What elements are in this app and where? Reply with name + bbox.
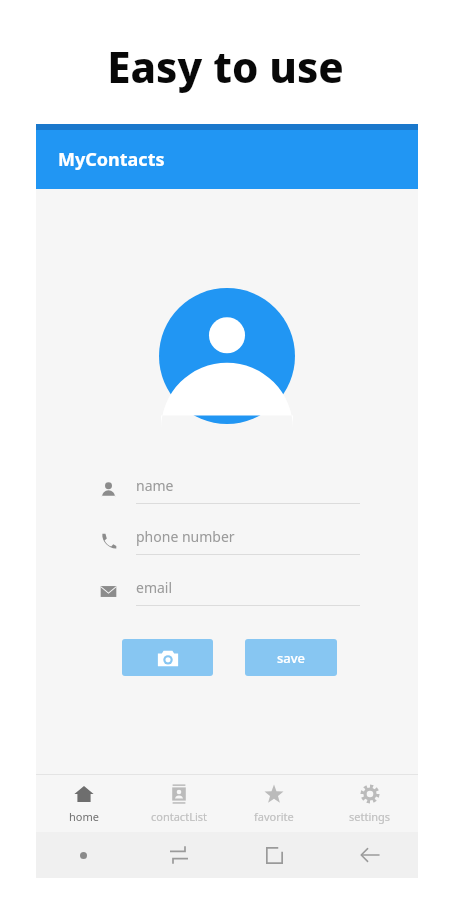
button[interactable]: contactList [131,775,226,832]
staticText: favorite [254,809,294,824]
staticText: MyContacts [58,147,165,172]
button[interactable]: name [100,472,360,507]
button[interactable]: Back [322,845,418,865]
button[interactable]: settings [322,775,418,832]
button[interactable]: Recents [226,847,322,864]
staticText: Easy to use [107,38,344,95]
staticText: email [136,578,173,597]
staticText: settings [349,809,391,824]
staticText: name [136,476,174,495]
button[interactable]: home [36,775,131,832]
button[interactable]: email [100,574,360,609]
button[interactable]: save [245,639,337,676]
button[interactable]: Switch apps [131,845,226,865]
button[interactable]: Take photo [122,639,213,676]
button[interactable]: favorite [226,775,322,832]
button[interactable]: phone number [100,523,360,558]
staticText: phone number [136,527,235,546]
staticText: save [277,649,306,667]
staticText: home [69,809,99,824]
staticText: contactList [151,809,207,824]
